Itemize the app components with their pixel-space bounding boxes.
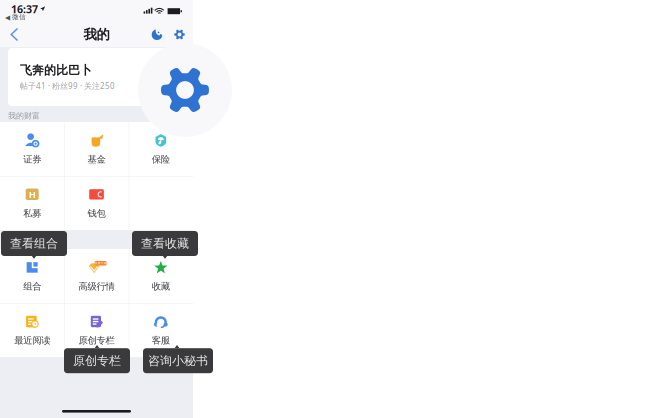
staticText: 收藏 [152, 281, 170, 292]
staticText: 咨询小秘书 [148, 353, 208, 368]
staticText: 飞奔的比巴卜 [20, 63, 92, 77]
staticText: 帖子41 · 粉丝99 · 关注250 [20, 81, 115, 91]
button[interactable]: 保险 [129, 122, 193, 176]
button[interactable]: 收藏 [129, 249, 193, 303]
button[interactable]: 最近阅读 [0, 303, 64, 357]
button[interactable]: 组合 [0, 249, 64, 303]
staticText: 我的 [83, 26, 109, 43]
button[interactable]: 钱包 [64, 176, 129, 230]
staticText: 钱包 [87, 208, 105, 219]
staticText: 客服 [152, 335, 170, 346]
button[interactable]: 免费升级 [64, 249, 129, 303]
staticText: 原创专栏 [78, 335, 114, 346]
staticText: 保险 [152, 154, 170, 165]
button[interactable]: Settings [164, 29, 185, 40]
staticText: 最近阅读 [14, 335, 50, 346]
staticText: 原创专栏 [73, 353, 121, 368]
staticText: 组合 [23, 281, 41, 292]
button[interactable]: H [0, 176, 64, 230]
button[interactable]: Night mode [153, 29, 164, 40]
button[interactable]: 客服 [129, 303, 193, 357]
staticText: 查看组合 [10, 236, 58, 251]
staticText: 证券 [23, 154, 41, 165]
staticText: 基金 [87, 154, 105, 165]
button[interactable]: 原创专栏 [64, 303, 129, 357]
button[interactable]: 证券 [0, 122, 64, 176]
staticText: 免费升级 [95, 261, 106, 265]
staticText: 私募 [23, 208, 41, 219]
staticText: 我的财富 [8, 111, 40, 121]
button[interactable]: 飞奔的比巴卜 [8, 48, 185, 106]
staticText: ◀ 微信 [5, 13, 26, 21]
button[interactable]: Back [8, 26, 24, 43]
staticText: 查看收藏 [141, 236, 189, 251]
staticText: 16:37 [11, 2, 38, 16]
staticText: H [29, 188, 36, 200]
button[interactable]: 基金 [64, 122, 129, 176]
staticText: 高级行情 [78, 281, 114, 292]
